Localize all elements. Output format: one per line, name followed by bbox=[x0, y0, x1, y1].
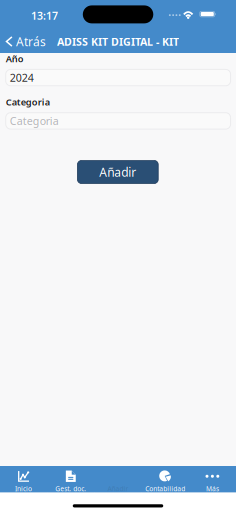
staticText: 13:17 bbox=[31, 9, 58, 23]
staticText: 2024 bbox=[10, 70, 34, 85]
button[interactable]: Contabilidad bbox=[142, 466, 189, 492]
staticText: ADISS KIT DIGITAL - KIT bbox=[57, 34, 179, 49]
staticText: Añadir bbox=[99, 164, 136, 180]
button[interactable]: Más bbox=[189, 466, 236, 492]
button[interactable]: Gest. doc. bbox=[47, 466, 94, 492]
staticText: Categoria bbox=[6, 96, 50, 108]
button[interactable]: Inicio bbox=[0, 466, 47, 492]
button[interactable]: Atrás bbox=[0, 29, 52, 53]
staticText: Inicio bbox=[15, 484, 32, 493]
button[interactable]: Añadir bbox=[77, 160, 158, 183]
button[interactable]: Categoria bbox=[6, 113, 231, 129]
staticText: Atrás bbox=[16, 33, 46, 49]
staticText: Categoria bbox=[10, 114, 59, 128]
button[interactable]: 2024 bbox=[6, 69, 231, 86]
staticText: Año bbox=[6, 52, 24, 65]
staticText: Gest. doc. bbox=[55, 484, 86, 493]
staticText: Contabilidad bbox=[145, 484, 185, 493]
staticText: Añadir bbox=[107, 484, 128, 493]
staticText: Más bbox=[206, 484, 219, 493]
